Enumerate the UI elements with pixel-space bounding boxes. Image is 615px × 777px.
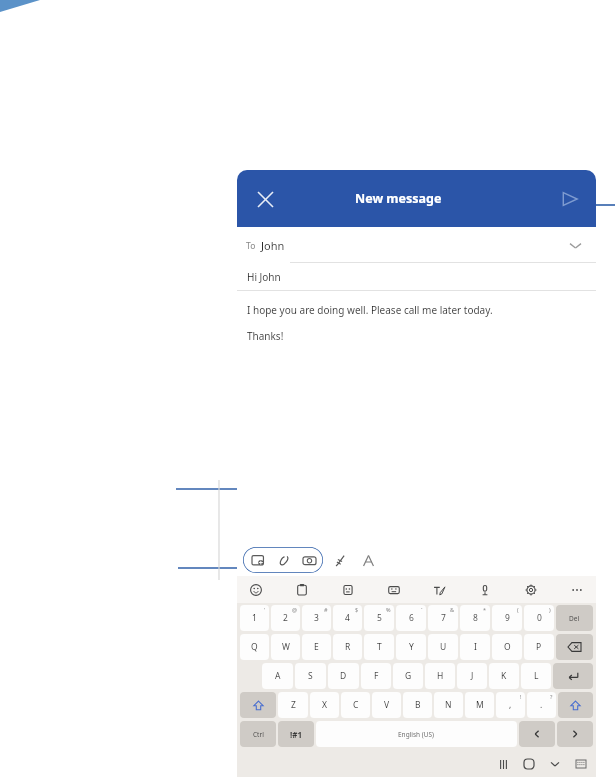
button[interactable]: C	[341, 692, 370, 718]
button[interactable]: E	[302, 634, 331, 660]
button[interactable]: Emoji	[245, 579, 267, 601]
button[interactable]: R	[333, 634, 362, 660]
button[interactable]: H	[425, 663, 455, 689]
button[interactable]: 8	[460, 605, 490, 631]
button[interactable]: 4	[333, 605, 362, 631]
button[interactable]: Insert image	[247, 549, 269, 571]
button[interactable]: 6	[396, 605, 426, 631]
button[interactable]: Send	[552, 181, 588, 217]
button[interactable]: P	[524, 634, 554, 660]
button[interactable]: Backspace	[556, 634, 593, 660]
button[interactable]: Next	[557, 721, 593, 747]
staticText: *	[483, 606, 487, 613]
button[interactable]: J	[457, 663, 487, 689]
staticText: )	[549, 606, 551, 613]
button[interactable]: Handwriting input	[428, 579, 450, 601]
staticText: 3	[314, 612, 319, 624]
button[interactable]: To	[237, 227, 596, 263]
button[interactable]: Hide keyboard	[568, 751, 594, 777]
button[interactable]: Clipboard	[291, 579, 313, 601]
button[interactable]: Hi John	[237, 263, 596, 291]
button[interactable]: Stickers	[337, 579, 359, 601]
staticText: 0	[537, 612, 542, 624]
staticText: !	[520, 693, 522, 700]
button[interactable]: 3	[302, 605, 331, 631]
button[interactable]: U	[428, 634, 458, 660]
button[interactable]: English (US)	[316, 721, 517, 747]
button[interactable]: Q	[240, 634, 269, 660]
staticText: I	[474, 641, 477, 653]
staticText: A	[275, 670, 281, 682]
button[interactable]: 1	[240, 605, 269, 631]
button[interactable]: Recents	[490, 751, 516, 777]
button[interactable]: S	[295, 663, 326, 689]
button[interactable]: Shift right	[558, 692, 593, 718]
button[interactable]: Y	[396, 634, 426, 660]
button[interactable]: Previous	[519, 721, 555, 747]
button[interactable]: K	[489, 663, 519, 689]
staticText: J	[471, 670, 474, 682]
staticText: U	[440, 641, 447, 653]
staticText: G	[405, 670, 412, 682]
button[interactable]: 0	[524, 605, 554, 631]
staticText: `	[421, 606, 423, 613]
button[interactable]: O	[492, 634, 522, 660]
button[interactable]: Handwriting	[329, 549, 351, 571]
staticText: R	[345, 641, 351, 653]
button[interactable]: B	[403, 692, 432, 718]
button[interactable]: 5	[364, 605, 394, 631]
button[interactable]: Expand recipients	[562, 232, 588, 258]
button[interactable]: Camera	[298, 549, 320, 571]
button[interactable]: Ctrl	[240, 721, 276, 747]
button[interactable]: G	[393, 663, 423, 689]
staticText: Z	[291, 699, 296, 711]
button[interactable]: Shift	[240, 692, 276, 718]
button[interactable]: X	[310, 692, 339, 718]
button[interactable]: Back	[542, 751, 568, 777]
button[interactable]: V	[372, 692, 401, 718]
button[interactable]: ,	[496, 692, 525, 718]
staticText: 2	[283, 612, 288, 624]
button[interactable]: Text formatting	[357, 549, 379, 571]
staticText: New message	[355, 190, 442, 207]
staticText: ?	[550, 693, 553, 700]
staticText: 1	[252, 612, 257, 624]
staticText: English (US)	[398, 730, 435, 739]
staticText: .	[540, 699, 543, 711]
button[interactable]: .	[527, 692, 556, 718]
button[interactable]: I	[460, 634, 490, 660]
button[interactable]: Home	[516, 751, 542, 777]
staticText: !#1	[290, 729, 302, 740]
button[interactable]: Voice input	[474, 579, 496, 601]
staticText: K	[501, 670, 507, 682]
button[interactable]: 9	[492, 605, 522, 631]
button[interactable]: More options	[566, 579, 588, 601]
button[interactable]: L	[521, 663, 551, 689]
staticText: S	[308, 670, 313, 682]
button[interactable]: T	[364, 634, 394, 660]
button[interactable]: 2	[271, 605, 300, 631]
staticText: Y	[409, 641, 414, 653]
button[interactable]: Del	[556, 605, 593, 631]
staticText: C	[353, 699, 359, 711]
button[interactable]: !#1	[278, 721, 314, 747]
button[interactable]: I hope you are doing well. Please call m…	[237, 291, 596, 544]
staticText: B	[415, 699, 421, 711]
staticText: 8	[473, 612, 478, 624]
staticText: 5	[377, 612, 382, 624]
button[interactable]: M	[465, 692, 494, 718]
button[interactable]: A	[262, 663, 293, 689]
staticText: John	[261, 238, 285, 253]
button[interactable]: W	[271, 634, 300, 660]
button[interactable]: N	[434, 692, 463, 718]
button[interactable]: Z	[278, 692, 308, 718]
staticText: To	[246, 240, 256, 252]
button[interactable]: F	[361, 663, 391, 689]
button[interactable]: Attach file	[272, 549, 294, 571]
button[interactable]: 7	[428, 605, 458, 631]
button[interactable]: Enter	[553, 663, 593, 689]
button[interactable]: Close	[247, 181, 283, 217]
button[interactable]: D	[328, 663, 359, 689]
button[interactable]: Emoji keyboard	[383, 579, 405, 601]
button[interactable]: Keyboard settings	[520, 579, 542, 601]
